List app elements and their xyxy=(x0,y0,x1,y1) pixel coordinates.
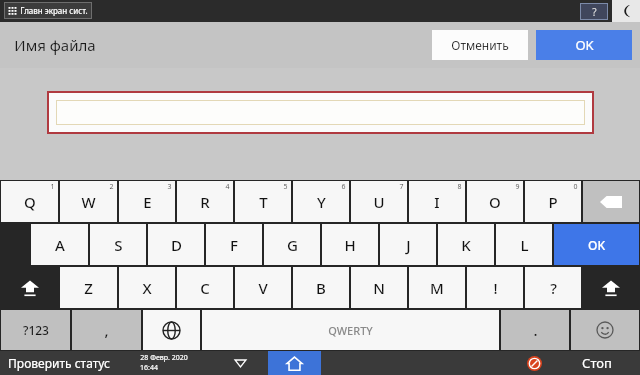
button[interactable]: T xyxy=(235,181,291,222)
staticText: W xyxy=(81,192,96,212)
staticText: 16:44 xyxy=(140,363,158,373)
staticText: 9 xyxy=(515,182,520,192)
button[interactable]: ?123 xyxy=(1,310,70,350)
button[interactable] xyxy=(56,100,585,125)
button[interactable]: H xyxy=(322,224,378,265)
button[interactable]: QWERTY xyxy=(202,310,499,350)
staticText: Имя файла xyxy=(14,35,96,55)
staticText: ! xyxy=(493,278,498,298)
button[interactable]: ? xyxy=(525,267,581,308)
button[interactable]: Night mode xyxy=(612,0,640,22)
button[interactable]: globe xyxy=(143,310,200,350)
button[interactable]: Отменить xyxy=(432,30,528,60)
button[interactable]: N xyxy=(351,267,407,308)
button[interactable]: , xyxy=(72,310,141,350)
staticText: J xyxy=(406,235,411,255)
staticText: E xyxy=(143,192,152,212)
button[interactable]: ! xyxy=(467,267,523,308)
button[interactable]: . xyxy=(501,310,569,350)
button[interactable]: O xyxy=(467,181,523,222)
staticText: N xyxy=(373,278,385,298)
button[interactable]: Y xyxy=(293,181,349,222)
staticText: Отменить xyxy=(451,37,509,53)
staticText: 5 xyxy=(283,182,288,192)
staticText: 4 xyxy=(225,182,230,192)
staticText: 2 xyxy=(109,182,114,192)
button[interactable]: U xyxy=(351,181,407,222)
staticText: L xyxy=(520,235,529,255)
staticText: H xyxy=(344,235,356,255)
staticText: F xyxy=(230,235,238,255)
staticText: O xyxy=(489,192,501,212)
staticText: 6 xyxy=(341,182,346,192)
staticText: K xyxy=(461,235,471,255)
staticText: M xyxy=(430,278,444,298)
staticText: , xyxy=(104,320,109,340)
button[interactable]: R xyxy=(177,181,233,222)
staticText: P xyxy=(548,192,558,212)
staticText: QWERTY xyxy=(328,323,373,338)
button[interactable]: K xyxy=(438,224,494,265)
staticText: Главн экран сист. xyxy=(20,5,88,16)
button[interactable]: D xyxy=(148,224,204,265)
staticText: U xyxy=(373,192,385,212)
button[interactable]: C xyxy=(177,267,233,308)
button[interactable]: E xyxy=(119,181,175,222)
button[interactable]: back xyxy=(583,181,639,222)
staticText: ?123 xyxy=(23,322,49,338)
staticText: OK xyxy=(575,36,594,54)
button[interactable]: V xyxy=(235,267,291,308)
button[interactable]: I xyxy=(409,181,465,222)
button[interactable]: Home xyxy=(268,351,321,375)
staticText: 28 Февр. 2020 xyxy=(140,353,188,363)
staticText: 3 xyxy=(167,182,172,192)
button[interactable]: M xyxy=(409,267,465,308)
staticText: B xyxy=(316,278,326,298)
staticText: ? xyxy=(550,278,557,298)
button[interactable]: Проверить статус xyxy=(0,351,140,375)
button[interactable]: emoji xyxy=(571,310,639,350)
button[interactable]: S xyxy=(90,224,146,265)
staticText: 8 xyxy=(457,182,462,192)
button[interactable]: Q xyxy=(1,181,58,222)
staticText: 7 xyxy=(399,182,404,192)
staticText: ? xyxy=(592,5,597,19)
staticText: R xyxy=(200,192,210,212)
button[interactable]: W xyxy=(60,181,117,222)
staticText: 0 xyxy=(573,182,578,192)
button[interactable]: F xyxy=(206,224,262,265)
staticText: 1 xyxy=(50,182,55,192)
staticText: S xyxy=(114,235,123,255)
button[interactable]: shift xyxy=(583,267,639,308)
button[interactable]: A xyxy=(31,224,88,265)
staticText: C xyxy=(200,278,210,298)
staticText: Y xyxy=(317,192,326,212)
button[interactable]: G xyxy=(264,224,320,265)
staticText: A xyxy=(55,235,65,255)
button[interactable]: X xyxy=(119,267,175,308)
staticText: Z xyxy=(84,278,93,298)
button[interactable]: L xyxy=(496,224,552,265)
staticText: G xyxy=(287,235,298,255)
button[interactable]: OK xyxy=(554,224,639,265)
button[interactable]: B xyxy=(293,267,349,308)
button[interactable]: Help xyxy=(580,3,608,20)
button[interactable]: Expand xyxy=(212,351,268,375)
staticText: Q xyxy=(24,192,36,212)
staticText: T xyxy=(259,192,268,212)
button[interactable]: OK xyxy=(536,30,632,60)
button[interactable]: P xyxy=(525,181,581,222)
staticText: Проверить статус xyxy=(8,355,110,371)
staticText: OK xyxy=(588,237,605,253)
button[interactable]: J xyxy=(380,224,436,265)
button[interactable]: Stop xyxy=(514,351,554,375)
staticText: . xyxy=(533,320,538,340)
staticText: Стоп xyxy=(582,354,612,372)
staticText: I xyxy=(434,192,440,212)
staticText: D xyxy=(171,235,182,255)
button[interactable]: Главн экран сист. xyxy=(4,2,92,19)
button[interactable]: Z xyxy=(60,267,117,308)
staticText: V xyxy=(258,278,268,298)
button[interactable]: Стоп xyxy=(554,351,640,375)
button[interactable]: shift xyxy=(1,267,58,308)
